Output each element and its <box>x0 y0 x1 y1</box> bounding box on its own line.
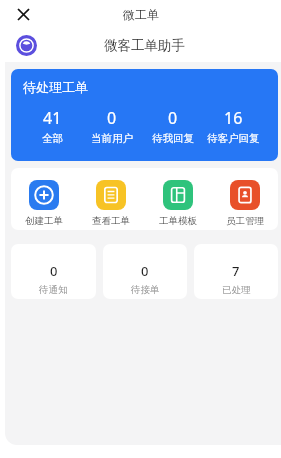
staticText: 0 <box>168 107 178 129</box>
button[interactable]: Close <box>13 4 34 25</box>
button[interactable]: 7 <box>194 244 278 299</box>
button[interactable]: 工单模板 <box>144 180 211 230</box>
button[interactable]: 创建工单 <box>11 180 77 230</box>
staticText: 7 <box>232 262 240 280</box>
staticText: 全部 <box>42 132 63 145</box>
staticText: 0 <box>107 107 117 129</box>
staticText: 待我回复 <box>152 132 194 145</box>
staticText: 员工管理 <box>226 215 264 227</box>
button[interactable]: 0 <box>11 244 96 299</box>
staticText: 待接单 <box>131 284 160 296</box>
staticText: 微客工单助手 <box>104 37 185 54</box>
button[interactable]: 0 <box>103 244 187 299</box>
staticText: 查看工单 <box>92 215 130 227</box>
staticText: 0 <box>50 262 58 280</box>
staticText: 微工单 <box>123 7 159 22</box>
staticText: 已处理 <box>222 284 251 296</box>
staticText: 待客户回复 <box>207 132 260 145</box>
button[interactable]: 员工管理 <box>211 180 278 230</box>
staticText: 待处理工单 <box>23 79 88 95</box>
staticText: 0 <box>141 262 149 280</box>
button[interactable]: 待处理工单 <box>11 69 278 161</box>
staticText: 16 <box>224 107 243 129</box>
staticText: 41 <box>43 107 62 129</box>
staticText: 当前用户 <box>91 132 133 145</box>
button[interactable]: 查看工单 <box>77 180 144 230</box>
staticText: 创建工单 <box>25 215 63 227</box>
staticText: 工单模板 <box>159 215 197 227</box>
staticText: 待通知 <box>39 284 68 296</box>
